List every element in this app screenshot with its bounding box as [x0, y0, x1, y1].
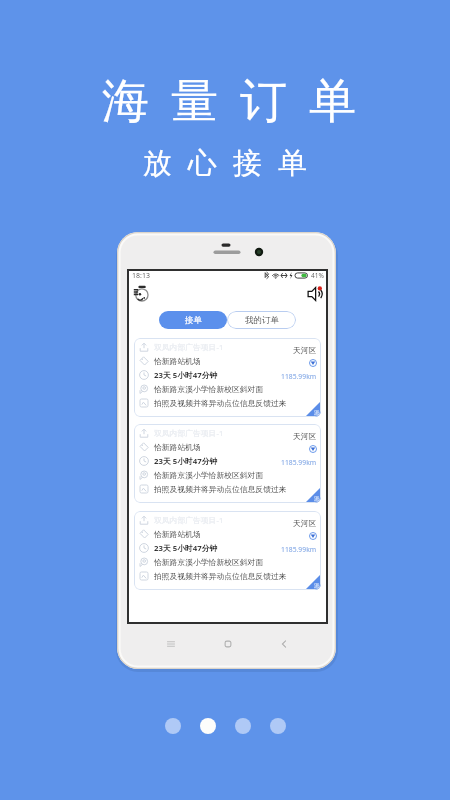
staticText: 接单 — [185, 315, 202, 326]
staticText: 派 — [314, 582, 320, 589]
button[interactable]: 接单 — [159, 311, 227, 329]
staticText: 双凤内部广告项目-1 — [154, 515, 224, 526]
staticText: 恰新路站机场 — [154, 529, 201, 539]
staticText: 恰新路京溪小学恰新校区斜对面 — [154, 557, 264, 567]
staticText: 我的订单 — [245, 315, 279, 326]
staticText: 23天 5小时47分钟 — [154, 543, 218, 554]
staticText: 双凤内部广告项目-1 — [154, 342, 224, 353]
button[interactable]: Back — [272, 632, 296, 656]
staticText: 恰新路京溪小学恰新校区斜对面 — [154, 384, 264, 394]
staticText: 天河区 — [293, 518, 317, 528]
button[interactable]: Page — [235, 718, 251, 734]
button[interactable]: Home — [216, 632, 240, 656]
staticText: 恰新路京溪小学恰新校区斜对面 — [154, 470, 264, 480]
staticText: 天河区 — [293, 431, 317, 441]
button[interactable]: Navigate — [309, 532, 317, 540]
staticText: 派 — [314, 409, 320, 416]
staticText: 41% — [311, 271, 324, 280]
staticText: 拍照及视频并将异动点位信息反馈过来 — [154, 484, 287, 494]
staticText: 放心接单 — [135, 145, 315, 182]
button[interactable]: 我的订单 — [227, 311, 296, 329]
staticText: 1185.99km — [281, 372, 317, 381]
button[interactable]: Announcements — [306, 285, 324, 303]
button[interactable]: Navigate — [309, 359, 317, 367]
staticText: 拍照及视频并将异动点位信息反馈过来 — [154, 571, 287, 581]
button[interactable]: Current page — [200, 718, 216, 734]
button[interactable]: Page — [165, 718, 181, 734]
button[interactable]: Navigate — [309, 445, 317, 453]
staticText: 23天 5小时47分钟 — [154, 370, 218, 381]
button[interactable]: Page — [270, 718, 286, 734]
button[interactable]: 双凤内部广告项目-1 — [134, 424, 321, 503]
staticText: 18:13 — [132, 271, 150, 281]
staticText: 恰新路站机场 — [154, 442, 201, 452]
staticText: 1185.99km — [281, 458, 317, 467]
button[interactable]: 双凤内部广告项目-1 — [134, 338, 321, 417]
staticText: 23天 5小时47分钟 — [154, 456, 218, 467]
staticText: 拍照及视频并将异动点位信息反馈过来 — [154, 398, 287, 408]
staticText: 1185.99km — [281, 545, 317, 554]
staticText: 双凤内部广告项目-1 — [154, 428, 224, 439]
button[interactable]: 双凤内部广告项目-1 — [134, 511, 321, 590]
staticText: 海量订单 — [91, 72, 367, 131]
button[interactable]: Profile — [131, 284, 151, 304]
staticText: 派 — [314, 495, 320, 502]
button[interactable]: Recent apps — [159, 632, 183, 656]
staticText: 恰新路站机场 — [154, 356, 201, 366]
staticText: 天河区 — [293, 345, 317, 355]
